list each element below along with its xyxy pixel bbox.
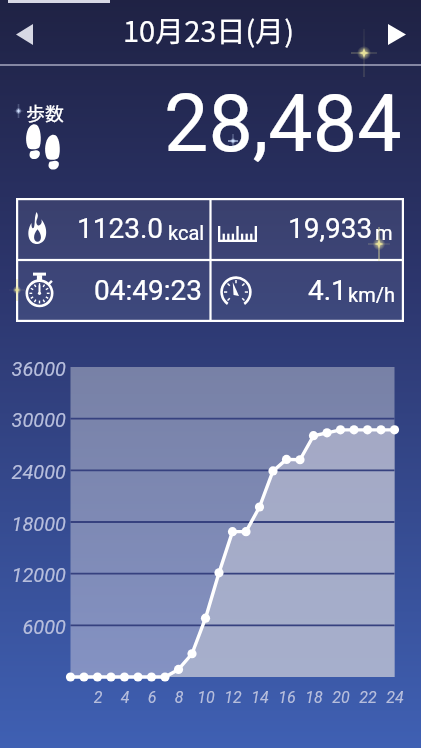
staticText: 30000 [8, 408, 66, 431]
staticText: 4 [113, 688, 137, 707]
staticText: 36000 [8, 357, 66, 380]
button[interactable]: 04:49:23 [16, 260, 210, 322]
staticText: 1123.0 [77, 212, 164, 245]
staticText: 10 [194, 688, 218, 707]
button[interactable]: 19,933 m [210, 198, 404, 260]
staticText: 8 [167, 688, 191, 707]
staticText: 16 [275, 688, 299, 707]
staticText: 2 [86, 688, 110, 707]
staticText: 22 [356, 688, 380, 707]
button[interactable]: 1123.0 kcal [16, 198, 210, 260]
staticText: 18000 [8, 512, 66, 535]
staticText: 6 [140, 688, 164, 707]
staticText: 24 [383, 688, 407, 707]
staticText: 6000 [8, 615, 66, 638]
button[interactable]: 4.1 km/h [210, 260, 404, 322]
staticText: 28,484 [164, 78, 402, 171]
staticText: m [375, 221, 393, 244]
staticText: kcal [168, 221, 205, 244]
staticText: 4.1 [308, 274, 347, 307]
staticText: 歩数 [26, 99, 65, 127]
staticText: 14 [248, 688, 272, 707]
staticText: 04:49:23 [94, 274, 202, 307]
staticText: 20 [329, 688, 353, 707]
staticText: 10月23日(月) [123, 8, 294, 50]
staticText: 18 [302, 688, 326, 707]
staticText: 12 [221, 688, 245, 707]
staticText: km/h [348, 283, 395, 306]
button[interactable]: Previous day [0, 1, 48, 67]
button[interactable]: Next day [370, 1, 421, 67]
staticText: 24000 [8, 460, 66, 483]
staticText: 19,933 [288, 212, 373, 245]
staticText: 12000 [8, 563, 66, 586]
